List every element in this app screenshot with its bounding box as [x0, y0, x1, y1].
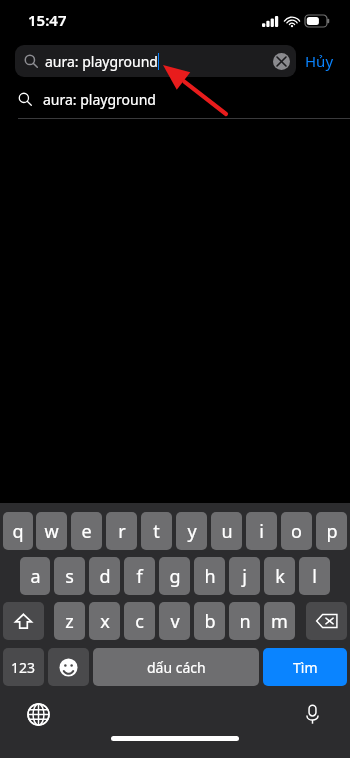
- staticText: e: [81, 519, 92, 544]
- staticText: v: [170, 609, 180, 634]
- staticText: w: [44, 519, 59, 544]
- staticText: s: [65, 564, 74, 589]
- button[interactable]: c: [124, 602, 155, 640]
- staticText: dấu cách: [147, 658, 206, 677]
- button[interactable]: Shift: [3, 602, 44, 640]
- staticText: o: [291, 519, 302, 544]
- button[interactable]: aura: playground: [15, 45, 296, 77]
- staticText: c: [135, 609, 144, 634]
- button[interactable]: Hủy: [296, 47, 338, 75]
- staticText: f: [136, 564, 143, 589]
- staticText: 15:47: [28, 10, 67, 30]
- staticText: u: [221, 519, 233, 544]
- button[interactable]: Change keyboard: [22, 698, 54, 730]
- staticText: i: [259, 519, 264, 544]
- staticText: 123: [11, 658, 36, 677]
- staticText: y: [187, 519, 197, 544]
- button[interactable]: z: [54, 602, 85, 640]
- button[interactable]: aura: playground: [0, 80, 350, 118]
- staticText: q: [12, 519, 24, 544]
- button[interactable]: l: [299, 557, 330, 595]
- button[interactable]: Dictate: [296, 698, 328, 730]
- staticText: m: [271, 609, 288, 634]
- button[interactable]: Emoji: [48, 648, 89, 686]
- button[interactable]: dấu cách: [93, 648, 259, 686]
- staticText: b: [204, 609, 216, 634]
- button[interactable]: t: [141, 512, 172, 550]
- button[interactable]: h: [194, 557, 225, 595]
- button[interactable]: s: [54, 557, 85, 595]
- button[interactable]: Clear text: [273, 53, 290, 70]
- staticText: h: [204, 564, 216, 589]
- button[interactable]: w: [36, 512, 67, 550]
- staticText: z: [65, 609, 74, 634]
- staticText: a: [30, 564, 41, 589]
- staticText: k: [275, 564, 285, 589]
- button[interactable]: x: [89, 602, 120, 640]
- staticText: g: [169, 564, 181, 589]
- button[interactable]: o: [281, 512, 312, 550]
- button[interactable]: d: [89, 557, 120, 595]
- staticText: aura: playground: [43, 90, 156, 109]
- staticText: aura: playground: [45, 52, 158, 71]
- button[interactable]: r: [106, 512, 137, 550]
- button[interactable]: k: [264, 557, 295, 595]
- button[interactable]: q: [3, 512, 33, 550]
- staticText: Tìm: [293, 658, 318, 677]
- staticText: p: [326, 519, 338, 544]
- button[interactable]: p: [316, 512, 347, 550]
- button[interactable]: g: [159, 557, 190, 595]
- staticText: j: [242, 564, 247, 589]
- staticText: x: [100, 609, 110, 634]
- button[interactable]: Backspace: [306, 602, 347, 640]
- button[interactable]: y: [176, 512, 207, 550]
- staticText: r: [118, 519, 126, 544]
- button[interactable]: j: [229, 557, 260, 595]
- button[interactable]: a: [20, 557, 50, 595]
- button[interactable]: u: [211, 512, 242, 550]
- button[interactable]: i: [246, 512, 277, 550]
- button[interactable]: b: [194, 602, 225, 640]
- staticText: n: [239, 609, 251, 634]
- button[interactable]: m: [264, 602, 295, 640]
- button[interactable]: 123: [3, 648, 44, 686]
- staticText: l: [312, 564, 317, 589]
- staticText: d: [99, 564, 111, 589]
- button[interactable]: f: [124, 557, 155, 595]
- button[interactable]: e: [71, 512, 102, 550]
- staticText: t: [153, 519, 160, 544]
- button[interactable]: v: [159, 602, 190, 640]
- staticText: Hủy: [305, 51, 334, 71]
- button[interactable]: n: [229, 602, 260, 640]
- button[interactable]: Tìm: [263, 648, 347, 686]
